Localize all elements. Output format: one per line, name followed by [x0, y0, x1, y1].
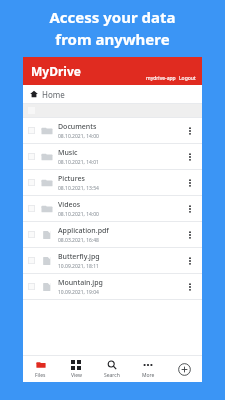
staticText: Home: [42, 89, 65, 100]
button[interactable]: Home: [23, 85, 202, 103]
staticText: Search: [104, 372, 120, 379]
staticText: 08.10.2021, 14:01: [58, 159, 99, 166]
button[interactable]: More options for Application.pdf: [183, 228, 197, 242]
button[interactable]: More: [130, 356, 166, 382]
staticText: 08.10.2021, 14:00: [58, 211, 99, 218]
staticText: Logout: [179, 75, 196, 82]
staticText: Music: [58, 148, 78, 158]
staticText: 10.09.2021, 19:04: [58, 289, 99, 296]
staticText: Access your data: [49, 7, 176, 27]
staticText: from anywhere: [55, 29, 170, 49]
staticText: mydrive-app: [146, 75, 176, 82]
button[interactable]: Logout: [179, 75, 196, 82]
button[interactable]: Documents: [23, 118, 202, 143]
button[interactable]: More options for Mountain.jpg: [183, 280, 197, 294]
staticText: MyDrive: [31, 63, 81, 79]
button[interactable]: Search: [94, 356, 130, 382]
staticText: Application.pdf: [58, 226, 109, 236]
button[interactable]: Files: [23, 356, 58, 382]
button[interactable]: More options for Videos: [183, 202, 197, 216]
button[interactable]: Add: [166, 356, 202, 382]
staticText: 08.03.2021, 16:48: [58, 237, 99, 244]
staticText: More: [142, 372, 155, 379]
staticText: View: [71, 372, 82, 379]
button[interactable]: More options for Butterfly.jpg: [183, 254, 197, 268]
button[interactable]: View: [58, 356, 94, 382]
button[interactable]: Music: [23, 144, 202, 169]
button[interactable]: More options for Music: [183, 150, 197, 164]
staticText: Mountain.jpg: [58, 278, 103, 288]
button[interactable]: Videos: [23, 196, 202, 221]
staticText: 08.10.2021, 13:54: [58, 185, 99, 192]
button[interactable]: Pictures: [23, 170, 202, 195]
button[interactable]: Application.pdf: [23, 222, 202, 247]
staticText: Files: [35, 372, 46, 379]
button[interactable]: More options for Pictures: [183, 176, 197, 190]
staticText: 10.09.2021, 18:11: [58, 263, 99, 270]
button[interactable]: More options for Documents: [183, 124, 197, 138]
staticText: 08.10.2021, 14:00: [58, 133, 99, 140]
staticText: Videos: [58, 200, 81, 210]
staticText: Documents: [58, 122, 97, 132]
button[interactable]: Mountain.jpg: [23, 274, 202, 299]
button[interactable]: Butterfly.jpg: [23, 248, 202, 273]
staticText: Butterfly.jpg: [58, 252, 100, 262]
staticText: Pictures: [58, 174, 85, 184]
